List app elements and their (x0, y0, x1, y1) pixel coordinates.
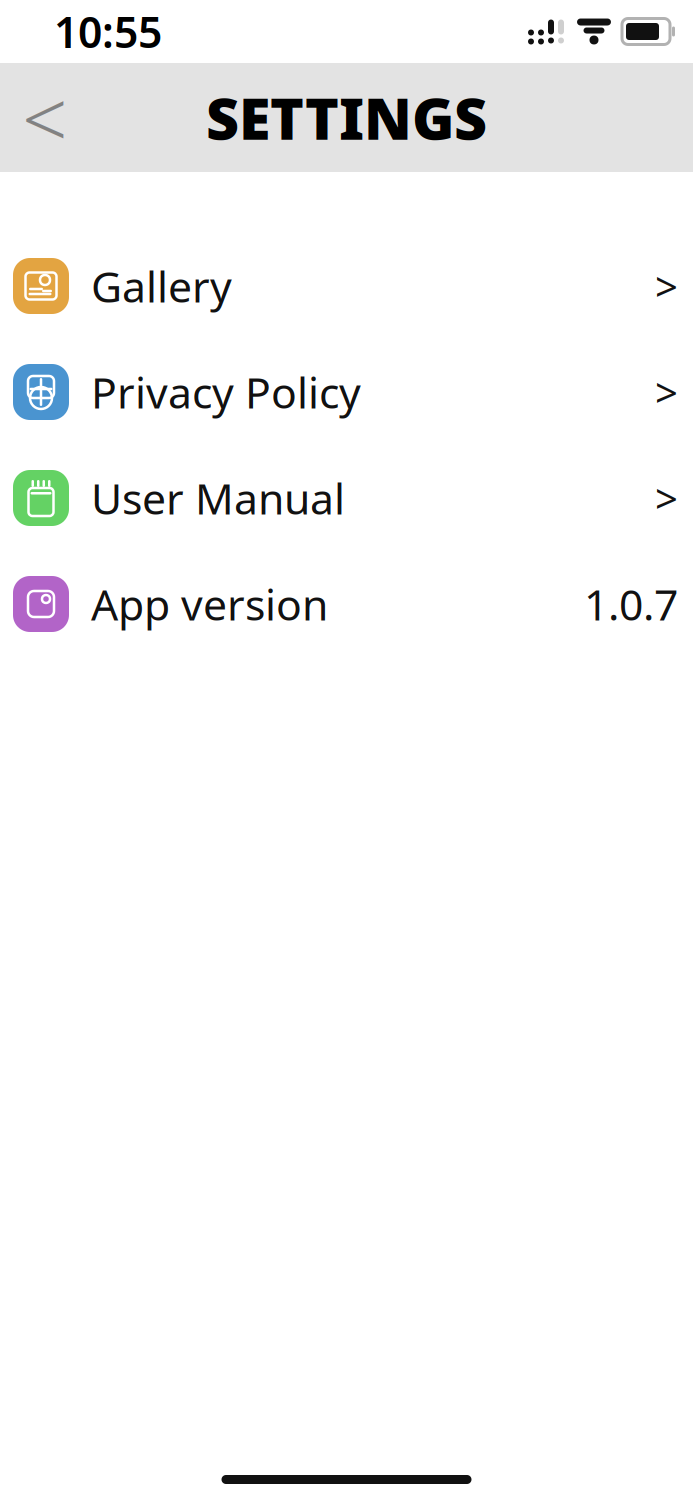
staticText: Privacy Policy (91, 364, 361, 420)
staticText: App version (91, 576, 328, 632)
button[interactable]: Gallery (0, 233, 693, 339)
button[interactable]: Back (0, 63, 90, 172)
staticText: Gallery (91, 258, 232, 314)
button[interactable]: User Manual (0, 445, 693, 551)
staticText: User Manual (91, 470, 345, 526)
staticText: 1.0.7 (584, 576, 678, 632)
staticText: < (22, 64, 68, 171)
staticText: > (655, 365, 678, 418)
button[interactable]: App version (0, 551, 693, 657)
staticText: 10:55 (54, 3, 162, 60)
button[interactable]: Privacy Policy (0, 339, 693, 445)
staticText: > (655, 471, 678, 524)
staticText: SETTINGS (206, 79, 487, 155)
staticText: > (655, 259, 678, 312)
